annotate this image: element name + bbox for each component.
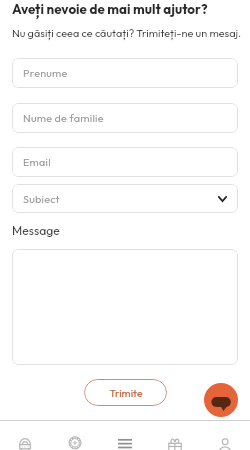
staticText: Aveți nevoie de mai mult ajutor? xyxy=(12,1,208,18)
button[interactable]: Trimite xyxy=(84,379,167,406)
button[interactable]: Nume de familie xyxy=(12,103,238,133)
staticText: Nu găsiți ceea ce căutați? Trimiteți-ne … xyxy=(12,26,242,40)
staticText: Email xyxy=(23,155,51,169)
staticText: Trimite xyxy=(109,386,143,399)
staticText: Message xyxy=(12,223,60,238)
staticText: Prenume xyxy=(23,66,68,80)
button[interactable]: Subiect xyxy=(12,184,238,213)
button[interactable]: Shop xyxy=(0,420,50,450)
staticText: Nume de familie xyxy=(23,111,104,125)
button[interactable]: Gifts xyxy=(150,420,200,450)
staticText: Subiect xyxy=(23,192,60,206)
button[interactable]: Email xyxy=(12,147,238,177)
button[interactable]: Rewards xyxy=(50,420,100,450)
button[interactable] xyxy=(12,249,238,365)
button[interactable]: Menu xyxy=(100,420,150,450)
button[interactable]: Chat xyxy=(204,383,238,417)
button[interactable]: Prenume xyxy=(12,58,238,88)
button[interactable]: Account xyxy=(200,420,250,450)
